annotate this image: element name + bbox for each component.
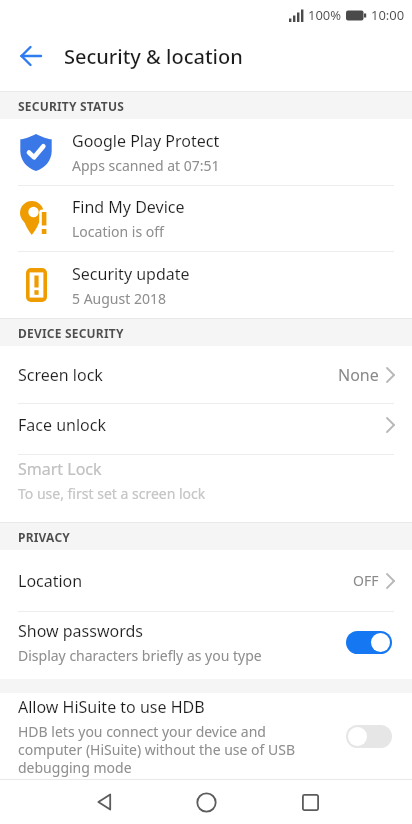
button[interactable] xyxy=(346,631,392,654)
staticText: None xyxy=(338,364,379,386)
staticText: OFF xyxy=(353,571,379,590)
button[interactable] xyxy=(84,782,124,822)
staticText: SECURITY STATUS xyxy=(18,98,124,114)
staticText: PRIVACY xyxy=(18,529,70,545)
button[interactable]: Find My Device xyxy=(0,186,412,251)
staticText: Google Play Protect xyxy=(72,130,220,152)
staticText: Screen lock xyxy=(18,364,103,386)
staticText: Display characters briefly as you type xyxy=(18,646,262,665)
staticText: DEVICE SECURITY xyxy=(18,325,124,341)
staticText: Allow HiSuite to use HDB xyxy=(18,696,205,718)
staticText: To use, first set a screen lock xyxy=(18,484,206,503)
staticText: Location xyxy=(18,570,83,592)
button[interactable] xyxy=(346,725,392,748)
staticText: Face unlock xyxy=(18,414,106,436)
staticText: 10:00 xyxy=(371,6,405,24)
staticText: 5 August 2018 xyxy=(72,289,166,308)
button[interactable]: Google Play Protect xyxy=(0,119,412,185)
staticText: Location is off xyxy=(72,222,164,241)
button[interactable]: Allow HiSuite to use HDB xyxy=(0,693,412,779)
button[interactable] xyxy=(186,782,226,822)
button[interactable]: Show passwords xyxy=(0,612,412,679)
staticText: HDB lets you connect your device and com… xyxy=(18,722,324,777)
staticText: Find My Device xyxy=(72,196,185,218)
button[interactable]: Location xyxy=(0,550,412,611)
staticText: Smart Lock xyxy=(18,458,102,480)
button[interactable]: Smart Lock xyxy=(0,455,412,522)
button[interactable] xyxy=(0,32,48,80)
staticText: Security & location xyxy=(64,43,243,70)
staticText: Security update xyxy=(72,263,190,285)
staticText: Show passwords xyxy=(18,620,143,642)
button[interactable]: Screen lock xyxy=(0,346,412,403)
button[interactable]: Security update xyxy=(0,252,412,318)
staticText: Apps scanned at 07:51 xyxy=(72,156,220,175)
button[interactable]: Face unlock xyxy=(0,404,412,454)
button[interactable] xyxy=(290,782,330,822)
staticText: 100% xyxy=(308,6,342,24)
